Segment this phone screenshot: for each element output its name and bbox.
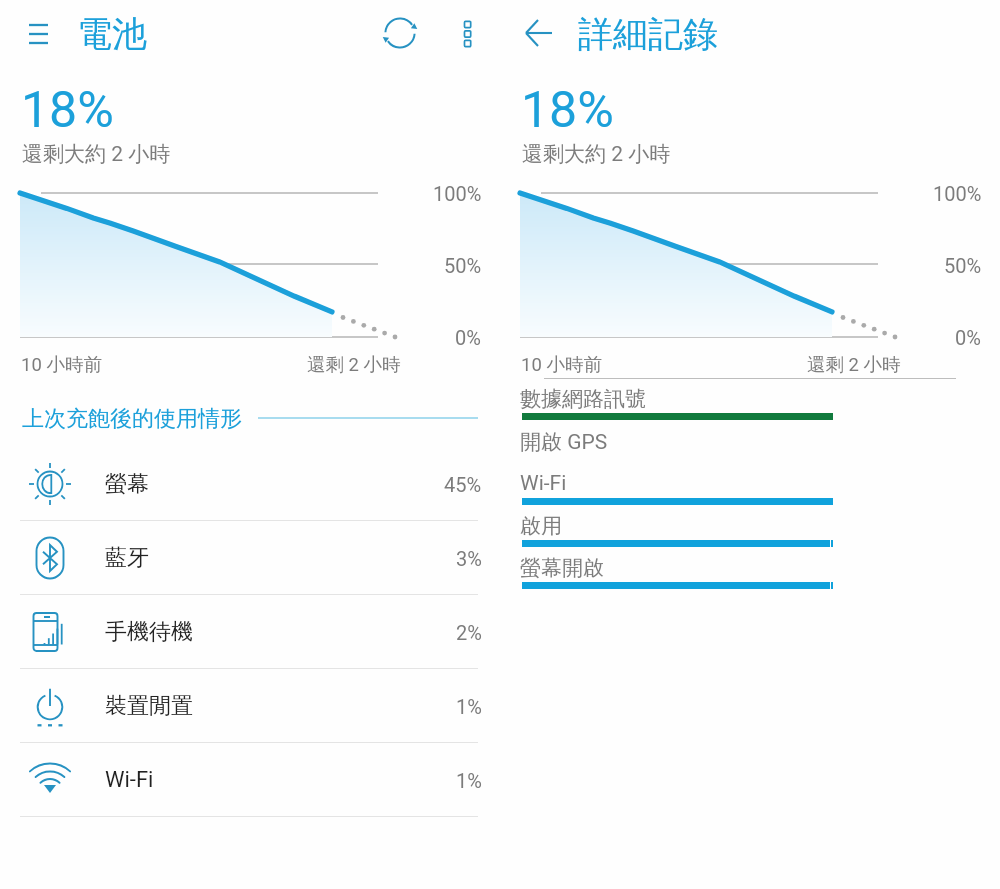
button[interactable]: Back bbox=[520, 15, 560, 51]
staticText: 0% bbox=[455, 326, 481, 349]
button[interactable]: More options bbox=[452, 14, 484, 52]
staticText: 100% bbox=[433, 182, 482, 205]
staticText: 1% bbox=[456, 695, 482, 718]
staticText: 10 小時前 bbox=[521, 353, 602, 376]
staticText: 0% bbox=[955, 326, 981, 349]
staticText: 50% bbox=[944, 254, 982, 277]
staticText: 裝置閒置 bbox=[105, 692, 193, 720]
staticText: 100% bbox=[933, 182, 982, 205]
staticText: 電池 bbox=[77, 12, 147, 56]
button[interactable]: Wi-Fi bbox=[0, 743, 500, 817]
staticText: 10 小時前 bbox=[21, 353, 102, 376]
button[interactable]: 螢幕 bbox=[0, 447, 500, 521]
staticText: 開啟 GPS bbox=[520, 429, 608, 455]
staticText: 還剩大約 2 小時 bbox=[22, 141, 171, 167]
staticText: 手機待機 bbox=[105, 618, 193, 646]
staticText: Wi-Fi bbox=[520, 471, 567, 496]
staticText: 18% bbox=[521, 81, 614, 140]
staticText: 1% bbox=[456, 769, 482, 792]
staticText: 還剩 2 小時 bbox=[807, 353, 901, 376]
button[interactable]: 裝置閒置 bbox=[0, 669, 500, 743]
staticText: 45% bbox=[444, 473, 482, 496]
staticText: 3% bbox=[456, 547, 482, 570]
button[interactable]: 藍牙 bbox=[0, 521, 500, 595]
staticText: 螢幕 bbox=[105, 470, 149, 498]
button[interactable]: Menu bbox=[25, 18, 53, 50]
staticText: 50% bbox=[444, 254, 482, 277]
staticText: 數據網路訊號 bbox=[520, 386, 646, 412]
staticText: 18% bbox=[21, 81, 114, 140]
staticText: 詳細記錄 bbox=[578, 12, 718, 56]
staticText: 還剩大約 2 小時 bbox=[522, 141, 671, 167]
staticText: 藍牙 bbox=[105, 544, 149, 572]
staticText: 還剩 2 小時 bbox=[307, 353, 401, 376]
staticText: 啟用 bbox=[520, 513, 562, 539]
button[interactable]: 手機待機 bbox=[0, 595, 500, 669]
staticText: 螢幕開啟 bbox=[520, 555, 604, 581]
button[interactable]: Refresh bbox=[380, 13, 420, 53]
staticText: Wi-Fi bbox=[105, 767, 154, 793]
staticText: 2% bbox=[456, 621, 482, 644]
staticText: 上次充飽後的使用情形 bbox=[22, 405, 242, 433]
